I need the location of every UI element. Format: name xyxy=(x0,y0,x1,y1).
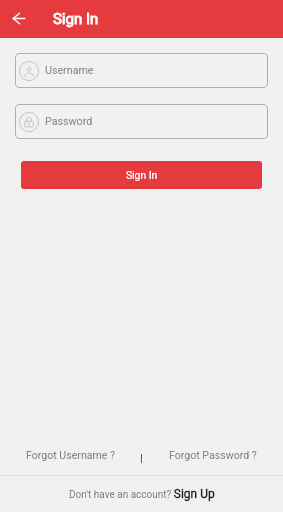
button[interactable]: Password xyxy=(15,104,268,139)
button[interactable]: Don't have an account? Sign Up xyxy=(0,476,283,512)
staticText: Don't have an account? Sign Up xyxy=(69,487,215,501)
staticText: Forgot Username ? xyxy=(26,449,116,461)
button[interactable]: Back xyxy=(7,7,31,31)
staticText: Sign In xyxy=(126,169,158,181)
button[interactable]: Sign In xyxy=(21,161,262,189)
staticText: Username xyxy=(45,64,94,77)
button[interactable]: Username xyxy=(15,53,268,88)
button[interactable]: Forgot Password ? xyxy=(142,436,283,474)
staticText: Password xyxy=(45,115,93,128)
staticText: Forgot Password ? xyxy=(169,449,257,461)
staticText: Sign In xyxy=(53,10,99,28)
button[interactable]: Forgot Username ? xyxy=(0,436,141,474)
